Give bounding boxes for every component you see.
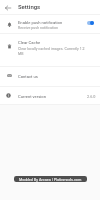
staticText: Contact us — [18, 74, 38, 79]
staticText: Modded By Arcaea | Platinmods.com — [19, 177, 82, 181]
staticText: Settings — [18, 3, 41, 10]
button[interactable]: Back — [2, 2, 13, 13]
staticText: Clear Cache — [18, 40, 41, 45]
staticText: Current version — [18, 94, 46, 99]
staticText: Clear locally cached images. Currently 1… — [18, 47, 89, 55]
staticText: Receive push notification — [18, 26, 59, 30]
staticText: 2.6.0 — [87, 94, 96, 98]
staticText: Enable push notification — [18, 20, 63, 25]
button[interactable]: Toggle push notification — [85, 18, 96, 28]
